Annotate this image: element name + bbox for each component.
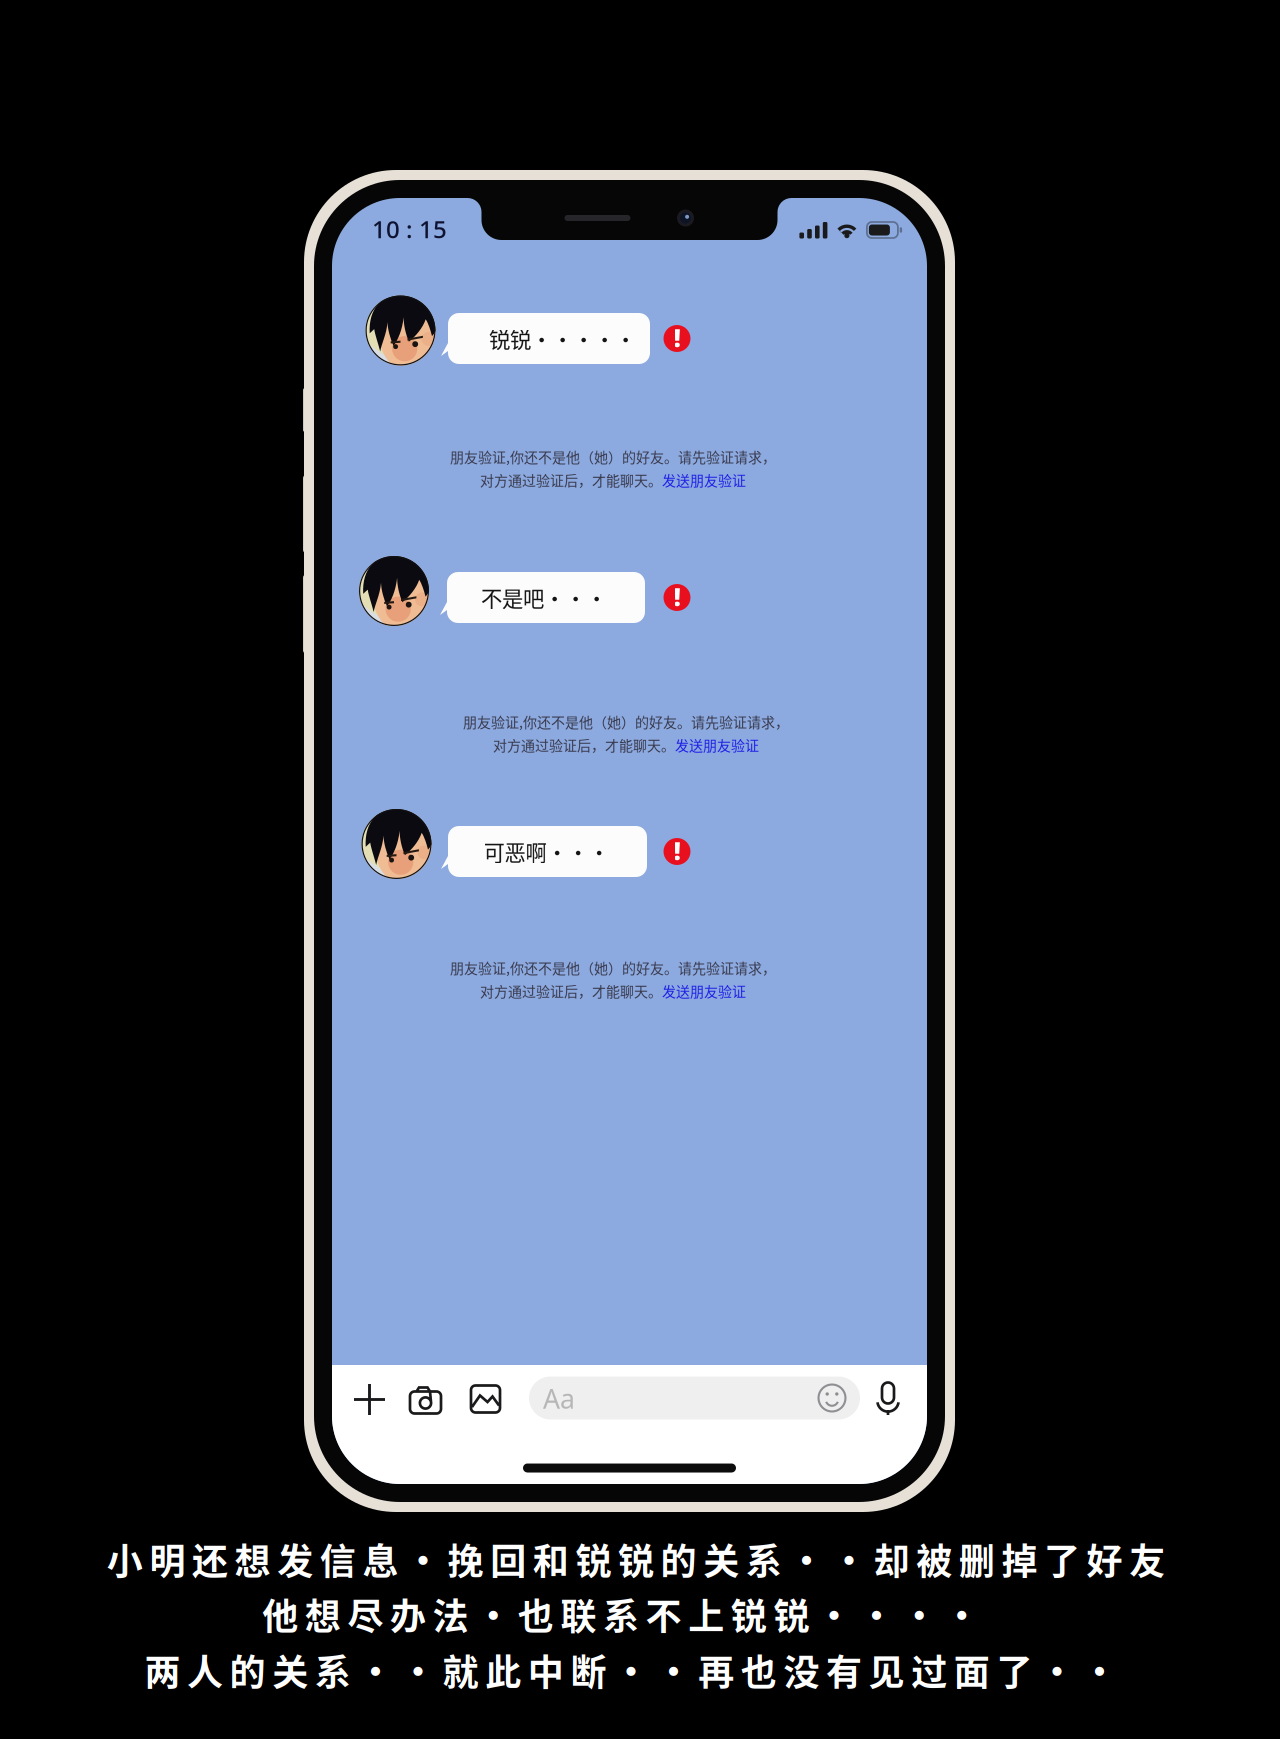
- staticText: 他想尽办法・也联系不上锐锐・・・・: [262, 1588, 980, 1640]
- staticText: 朋友验证,你还不是他（她）的好友。请先验证请求，: [450, 446, 776, 466]
- button[interactable]: Aa: [529, 1376, 860, 1419]
- button[interactable]: More options: [345, 1375, 393, 1423]
- button[interactable]: [447, 572, 645, 623]
- button[interactable]: Camera: [401, 1375, 449, 1423]
- staticText: !: [673, 321, 680, 354]
- staticText: 对方通过验证后，才能聊天。: [480, 980, 662, 1001]
- button[interactable]: 发送朋友验证: [662, 469, 746, 490]
- button[interactable]: Photo library: [461, 1375, 509, 1423]
- staticText: 发送朋友验证: [662, 469, 746, 490]
- staticText: 不是吧・・・: [481, 582, 607, 613]
- button[interactable]: [448, 313, 650, 364]
- button[interactable]: 发送朋友验证: [675, 734, 759, 755]
- button[interactable]: [448, 826, 647, 877]
- staticText: 发送朋友验证: [675, 734, 759, 755]
- staticText: Aa: [543, 1381, 575, 1416]
- staticText: 小明还想发信息・挽回和锐锐的关系・・却被删掉了好友: [107, 1533, 1165, 1585]
- staticText: 锐锐・・・・・: [489, 323, 636, 354]
- staticText: !: [673, 580, 680, 613]
- staticText: 可恶啊・・・: [483, 836, 609, 867]
- button[interactable]: 发送朋友验证: [662, 980, 746, 1001]
- staticText: 发送朋友验证: [662, 980, 746, 1001]
- staticText: 朋友验证,你还不是他（她）的好友。请先验证请求，: [463, 711, 789, 731]
- staticText: !: [673, 834, 680, 867]
- staticText: 对方通过验证后，才能聊天。: [493, 734, 675, 755]
- button[interactable]: Voice message: [866, 1374, 910, 1422]
- staticText: 两人的关系・・就此中断・・再也没有见过面了・・: [144, 1644, 1118, 1696]
- staticText: 朋友验证,你还不是他（她）的好友。请先验证请求，: [450, 957, 776, 977]
- staticText: 10 : 15: [372, 213, 447, 245]
- staticText: 对方通过验证后，才能聊天。: [480, 469, 662, 490]
